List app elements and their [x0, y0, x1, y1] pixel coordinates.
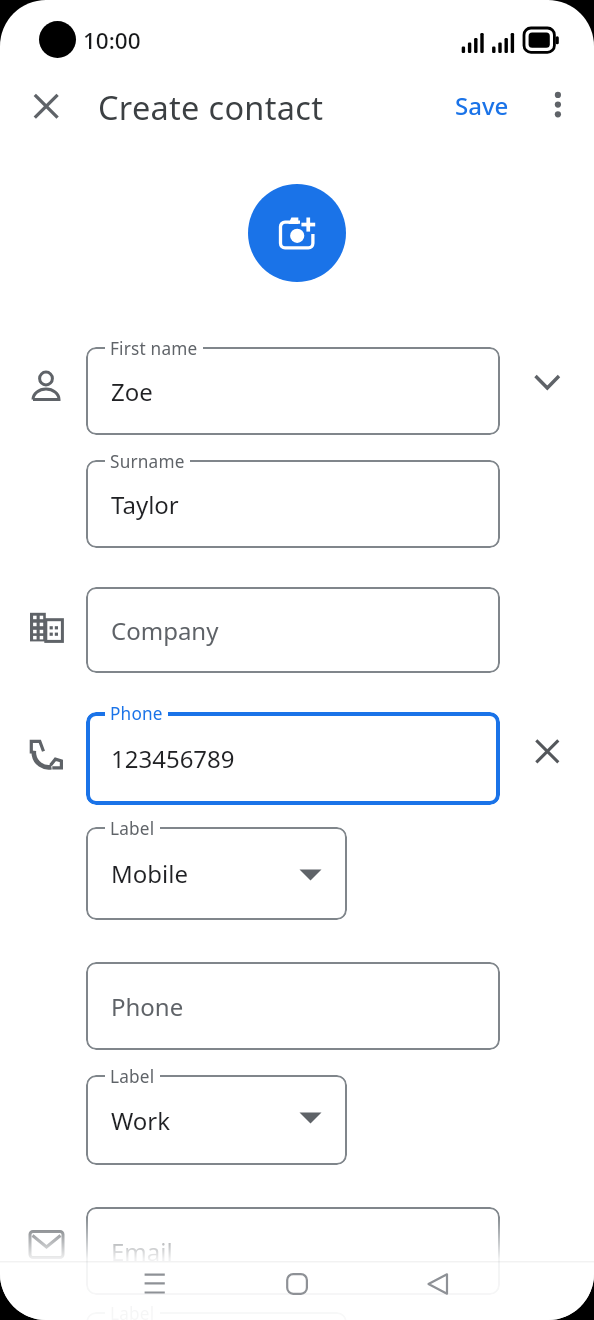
button[interactable]	[86, 827, 347, 920]
button[interactable]: Save	[446, 81, 518, 129]
button[interactable]	[248, 184, 346, 282]
staticText: Label	[110, 1302, 155, 1320]
button[interactable]	[86, 347, 500, 435]
staticText: Zoe	[111, 375, 153, 408]
button[interactable]	[86, 1207, 500, 1295]
staticText: Phone	[110, 702, 163, 722]
staticText: Create contact	[98, 85, 324, 125]
staticText: Label	[110, 1065, 155, 1085]
button[interactable]	[86, 1075, 347, 1165]
staticText: Taylor	[111, 488, 179, 521]
button[interactable]	[86, 712, 500, 805]
button[interactable]	[523, 728, 571, 776]
button[interactable]	[86, 1312, 347, 1320]
staticText: Phone	[111, 990, 184, 1023]
staticText: Label	[110, 817, 155, 837]
button[interactable]	[262, 1252, 332, 1312]
button[interactable]	[86, 460, 500, 548]
button[interactable]	[86, 587, 500, 673]
button[interactable]	[403, 1252, 473, 1312]
staticText: Mobile	[111, 857, 188, 890]
staticText: Work	[111, 1104, 171, 1137]
staticText: Save	[455, 89, 509, 122]
button[interactable]	[22, 82, 70, 130]
staticText: Surname	[110, 450, 185, 470]
staticText: 10:00	[83, 25, 141, 55]
staticText: 123456789	[111, 742, 235, 775]
staticText: Company	[111, 614, 219, 647]
button[interactable]	[534, 81, 582, 129]
button[interactable]	[86, 962, 500, 1050]
button[interactable]	[523, 358, 571, 406]
button[interactable]	[120, 1252, 190, 1312]
staticText: First name	[110, 337, 198, 357]
staticText: Email	[111, 1235, 173, 1268]
